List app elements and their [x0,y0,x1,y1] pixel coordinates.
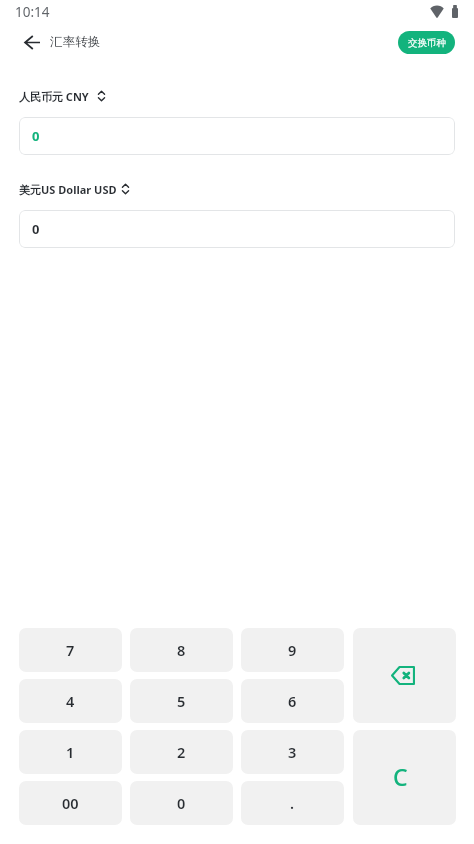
button[interactable]: 0 [19,210,455,248]
button[interactable]: 8 [130,628,233,672]
button[interactable]: Back [17,28,47,56]
button[interactable]: 美元US Dollar USD [19,180,129,198]
button[interactable]: 00 [19,781,122,825]
staticText: 00 [62,793,79,813]
button[interactable]: 2 [130,730,233,774]
button[interactable]: Backspace [353,628,456,723]
staticText: 3 [288,742,297,762]
staticText: C [393,761,408,792]
staticText: 1 [66,742,75,762]
button[interactable]: 9 [241,628,344,672]
button[interactable]: 3 [241,730,344,774]
button[interactable]: 0 [130,781,233,825]
staticText: 8 [177,640,186,660]
staticText: 6 [288,691,297,711]
button[interactable]: 0 [19,117,455,155]
staticText: 美元US Dollar USD [19,182,117,197]
button[interactable]: 6 [241,679,344,723]
staticText: 0 [32,220,40,238]
button[interactable]: 4 [19,679,122,723]
button[interactable]: . [241,781,344,825]
staticText: 0 [177,793,186,813]
button[interactable]: C [353,730,456,825]
button[interactable]: 交换币种 [398,31,455,54]
button[interactable]: 1 [19,730,122,774]
button[interactable]: 5 [130,679,233,723]
staticText: 2 [177,742,186,762]
staticText: 5 [177,691,186,711]
button[interactable]: 人民币元 CNY [19,87,105,105]
staticText: 交换币种 [408,37,446,49]
staticText: 9 [288,640,297,660]
staticText: 10:14 [15,3,50,21]
staticText: 人民币元 CNY [19,89,89,104]
staticText: 汇率转换 [50,34,101,50]
staticText: . [290,793,295,813]
staticText: 0 [32,127,40,145]
staticText: 4 [66,691,75,711]
staticText: 7 [66,640,75,660]
button[interactable]: 7 [19,628,122,672]
